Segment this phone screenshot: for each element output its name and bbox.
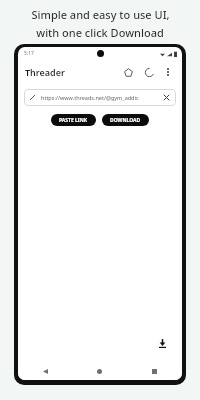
staticText: DOWNLOAD <box>110 117 141 124</box>
button[interactable]: Favorites <box>120 64 136 80</box>
button[interactable]: Dark mode <box>141 64 157 80</box>
button[interactable]: PASTE LINK <box>51 114 96 126</box>
button[interactable]: Back <box>18 363 72 380</box>
button[interactable]: Recent apps <box>127 363 182 380</box>
button[interactable]: https://www.threads.net/@gym_addic <box>24 89 176 106</box>
button[interactable]: Home <box>72 363 127 380</box>
staticText: 5:17 <box>24 50 34 57</box>
button[interactable]: Download <box>150 331 174 355</box>
staticText: https://www.threads.net/@gym_addic <box>41 94 159 101</box>
staticText: Simple and easy to use UI, <box>31 7 170 22</box>
button[interactable]: Clear <box>162 93 171 102</box>
button[interactable]: More options <box>161 65 175 79</box>
staticText: with one click Download <box>36 25 164 40</box>
staticText: Threader <box>25 66 65 78</box>
button[interactable]: DOWNLOAD <box>102 114 149 126</box>
staticText: PASTE LINK <box>59 117 88 124</box>
